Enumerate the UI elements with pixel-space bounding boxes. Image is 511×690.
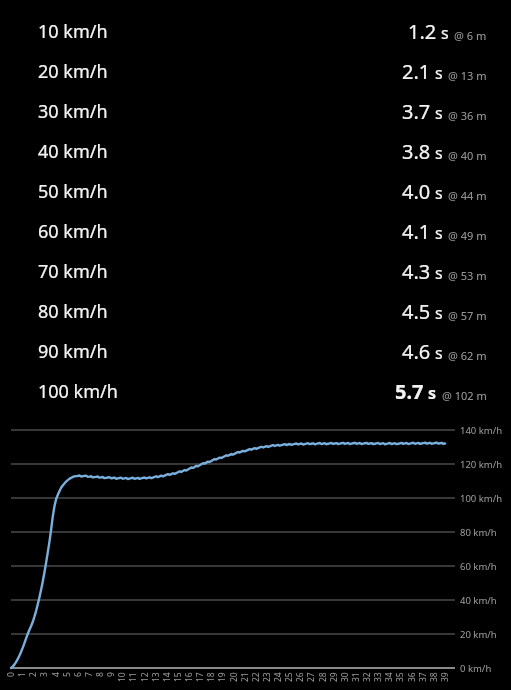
button[interactable]: 90 km/h xyxy=(0,331,511,371)
staticText: 70 km/h xyxy=(38,259,108,284)
staticText: 3.7 xyxy=(402,98,431,125)
staticText: 4.0 xyxy=(402,178,431,205)
staticText: 1.2 xyxy=(408,18,437,45)
button[interactable]: 60 km/h xyxy=(0,211,511,251)
staticText: 10 km/h xyxy=(38,19,108,44)
staticText: 30 km/h xyxy=(38,99,108,124)
staticText: s xyxy=(435,142,443,164)
staticText: 40 km/h xyxy=(38,139,108,164)
staticText: @ 57 m xyxy=(448,308,487,323)
staticText: 100 km/h xyxy=(38,379,118,404)
button[interactable]: 80 km/h xyxy=(0,291,511,331)
staticText: 90 km/h xyxy=(38,339,108,364)
staticText: 3.8 xyxy=(402,138,431,165)
button[interactable] xyxy=(0,424,511,690)
staticText: 50 km/h xyxy=(38,179,108,204)
staticText: s xyxy=(435,62,443,84)
staticText: @ 49 m xyxy=(448,228,487,243)
staticText: @ 40 m xyxy=(448,148,487,163)
staticText: @ 36 m xyxy=(448,108,487,123)
staticText: 5.7 xyxy=(395,378,424,405)
staticText: 20 km/h xyxy=(38,59,108,84)
staticText: s xyxy=(435,102,443,124)
staticText: s xyxy=(435,222,443,244)
staticText: 4.1 xyxy=(402,218,431,245)
button[interactable]: 30 km/h xyxy=(0,91,511,131)
button[interactable]: 20 km/h xyxy=(0,51,511,91)
staticText: @ 44 m xyxy=(448,188,487,203)
button[interactable]: 100 km/h xyxy=(0,371,511,411)
staticText: s xyxy=(435,182,443,204)
staticText: 2.1 xyxy=(402,58,431,85)
staticText: @ 6 m xyxy=(454,28,487,43)
button[interactable]: 70 km/h xyxy=(0,251,511,291)
staticText: s xyxy=(435,302,443,324)
staticText: 80 km/h xyxy=(38,299,108,324)
staticText: s xyxy=(435,262,443,284)
button[interactable]: 10 km/h xyxy=(0,11,511,51)
staticText: @ 102 m xyxy=(442,388,487,403)
staticText: 4.6 xyxy=(402,338,431,365)
staticText: @ 13 m xyxy=(448,68,487,83)
button[interactable]: 50 km/h xyxy=(0,171,511,211)
staticText: @ 62 m xyxy=(448,348,487,363)
button[interactable]: 40 km/h xyxy=(0,131,511,171)
staticText: 4.3 xyxy=(402,258,431,285)
staticText: s xyxy=(435,342,443,364)
staticText: s xyxy=(441,22,449,44)
staticText: 60 km/h xyxy=(38,219,108,244)
staticText: 4.5 xyxy=(402,298,431,325)
staticText: @ 53 m xyxy=(448,268,487,283)
staticText: s xyxy=(428,382,437,404)
